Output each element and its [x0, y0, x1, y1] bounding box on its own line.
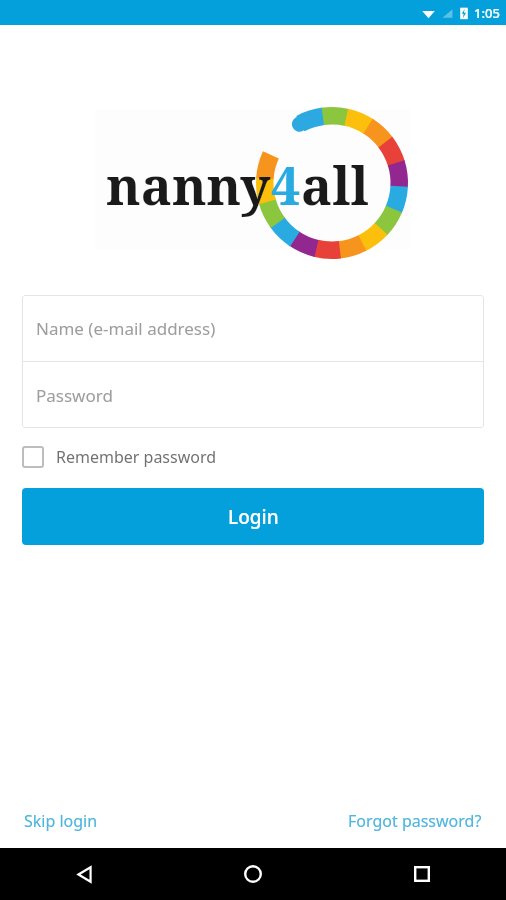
button[interactable]: Home — [168, 848, 337, 900]
button[interactable]: Back — [0, 848, 168, 900]
staticText: Name (e-mail address) — [36, 317, 216, 340]
staticText: Skip login — [24, 810, 98, 832]
staticText: nanny — [106, 149, 271, 220]
button[interactable]: Login — [22, 488, 484, 545]
button[interactable]: Forgot password? — [338, 802, 492, 840]
staticText: Password — [36, 384, 113, 407]
staticText: 4 — [271, 149, 301, 220]
staticText: all — [301, 149, 369, 220]
button[interactable]: Skip login — [14, 802, 108, 840]
button[interactable]: Recent apps — [337, 848, 506, 900]
staticText: Remember password — [56, 446, 217, 468]
button[interactable]: Remember password — [22, 444, 227, 470]
staticText: Forgot password? — [348, 810, 482, 832]
staticText: Login — [228, 504, 279, 530]
staticText: 1:05 — [474, 4, 500, 22]
button[interactable]: Password — [22, 362, 484, 428]
button[interactable]: Name (e-mail address) — [22, 295, 484, 361]
